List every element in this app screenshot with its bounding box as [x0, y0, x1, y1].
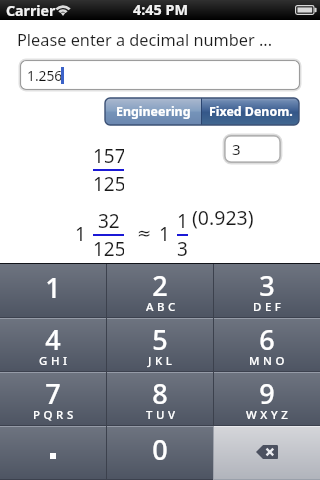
- button[interactable]: 3: [223, 134, 282, 164]
- staticText: 157: [93, 143, 124, 169]
- button[interactable]: 1.256: [19, 59, 301, 91]
- staticText: 6: [259, 321, 275, 358]
- staticText: 125: [93, 236, 124, 262]
- staticText: 1: [177, 208, 188, 234]
- button[interactable]: 3: [214, 264, 320, 318]
- staticText: 1: [45, 269, 61, 306]
- staticText: ABC: [146, 299, 179, 315]
- button[interactable]: [0, 426, 106, 480]
- staticText: 4:45 PM: [133, 0, 188, 20]
- button[interactable]: 8: [107, 372, 213, 426]
- button[interactable]: Delete: [214, 426, 320, 480]
- staticText: 3: [259, 267, 275, 304]
- staticText: ≈: [137, 223, 152, 243]
- staticText: 1: [159, 221, 170, 247]
- staticText: 9: [259, 375, 275, 412]
- button[interactable]: 0: [107, 426, 213, 480]
- staticText: 1: [75, 221, 86, 247]
- staticText: 5: [152, 321, 168, 358]
- staticText: PQRS: [33, 407, 77, 423]
- button[interactable]: 9: [214, 372, 320, 426]
- staticText: 125: [93, 171, 124, 197]
- button[interactable]: 7: [0, 372, 106, 426]
- staticText: 0: [152, 431, 168, 468]
- staticText: 3: [232, 139, 241, 159]
- button[interactable]: Engineering: [105, 98, 201, 125]
- staticText: 4: [45, 321, 61, 358]
- staticText: MNO: [249, 353, 289, 369]
- button[interactable]: 1: [0, 264, 106, 318]
- staticText: Fixed Denom.: [209, 103, 293, 120]
- staticText: 32: [98, 208, 120, 234]
- button[interactable]: Fixed Denom.: [202, 98, 299, 125]
- staticText: 3: [177, 236, 188, 262]
- staticText: (0.923): [192, 204, 254, 231]
- staticText: Please enter a decimal number ...: [17, 29, 273, 51]
- staticText: 8: [152, 375, 168, 412]
- staticText: WXYZ: [246, 407, 292, 423]
- staticText: JKL: [148, 353, 176, 369]
- button[interactable]: 5: [107, 318, 213, 372]
- staticText: Engineering: [116, 103, 191, 120]
- staticText: DEF: [253, 299, 285, 315]
- staticText: 7: [45, 375, 61, 412]
- staticText: GHI: [39, 353, 71, 369]
- button[interactable]: 6: [214, 318, 320, 372]
- button[interactable]: 4: [0, 318, 106, 372]
- staticText: Carrier: [6, 1, 56, 20]
- staticText: 1.256: [27, 66, 63, 85]
- staticText: 2: [152, 267, 168, 304]
- button[interactable]: 2: [107, 264, 213, 318]
- staticText: TUV: [146, 407, 179, 423]
